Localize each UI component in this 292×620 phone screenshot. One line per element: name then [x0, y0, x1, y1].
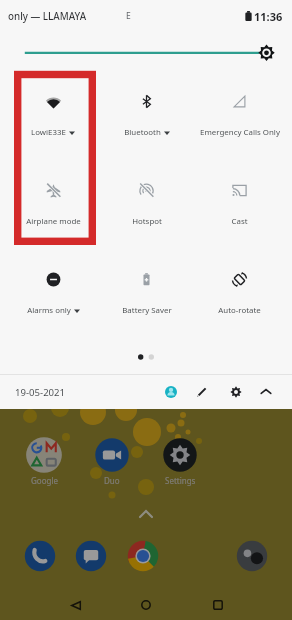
button[interactable] [13, 537, 67, 575]
button[interactable]: Auto-rotate [193, 263, 286, 352]
staticText: Emergency Calls Only [200, 127, 280, 138]
staticText: Auto-rotate [218, 305, 261, 316]
button[interactable]: User [158, 379, 184, 405]
staticText: Alarms only [27, 305, 71, 316]
button[interactable]: Collapse [253, 379, 279, 405]
staticText: Google [31, 475, 58, 486]
button[interactable]: Edit [189, 379, 215, 405]
button[interactable]: Google [17, 436, 71, 486]
button[interactable]: Alarms only [6, 263, 100, 352]
button[interactable] [64, 537, 118, 575]
staticText: 11:36 [254, 9, 283, 24]
staticText: Hotspot [132, 216, 162, 227]
button[interactable]: LowiE33E [6, 85, 100, 174]
button[interactable]: Cast [193, 174, 286, 263]
staticText: Bluetooth [124, 127, 161, 138]
staticText: only — LLAMAYA [8, 10, 87, 23]
button[interactable]: Duo [85, 436, 139, 486]
button[interactable]: Bluetooth [100, 85, 193, 174]
staticText: Airplane mode [26, 216, 81, 227]
button[interactable]: Airplane mode [6, 174, 100, 263]
button[interactable]: Settings [153, 436, 207, 486]
button[interactable]: Battery Saver [100, 263, 193, 352]
button[interactable]: Emergency Calls Only [193, 85, 286, 174]
button[interactable] [116, 537, 170, 575]
button[interactable]: Hotspot [100, 174, 193, 263]
staticText: E [126, 10, 131, 22]
button[interactable] [225, 537, 279, 575]
staticText: Cast [231, 216, 248, 227]
button[interactable]: Recents [206, 593, 230, 617]
staticText: LowiE33E [31, 127, 66, 138]
button[interactable]: Settings [223, 379, 249, 405]
staticText: Duo [104, 475, 120, 486]
button[interactable]: Home [134, 593, 158, 617]
staticText: Battery Saver [122, 305, 172, 316]
staticText: 19-05-2021 [15, 386, 66, 399]
button[interactable]: Back [64, 593, 88, 617]
staticText: Settings [165, 475, 196, 486]
